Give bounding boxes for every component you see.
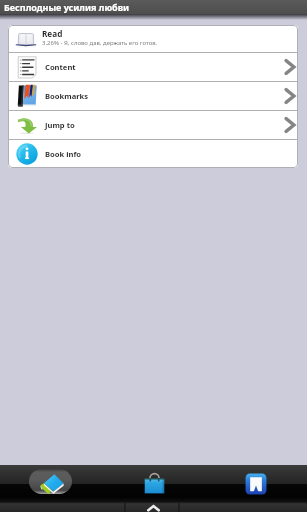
staticText: 3.26% - Я, слово дав, держать его готов. [42, 39, 158, 47]
button[interactable]: My books [0, 465, 103, 503]
button[interactable]: Book info [8, 140, 298, 168]
staticText: Bookmarks [45, 91, 89, 101]
button[interactable]: Store [103, 465, 205, 503]
staticText: Read [42, 28, 63, 39]
button[interactable]: Jump to [8, 111, 298, 139]
staticText: Бесплодные усилия любви [4, 1, 130, 13]
button[interactable]: Bookmarks [8, 82, 298, 110]
button[interactable]: Library [205, 465, 307, 503]
staticText: Content [45, 62, 76, 72]
button[interactable]: Read [8, 25, 298, 52]
staticText: Jump to [45, 120, 75, 130]
button[interactable]: Content [8, 53, 298, 81]
staticText: Book info [45, 149, 82, 159]
